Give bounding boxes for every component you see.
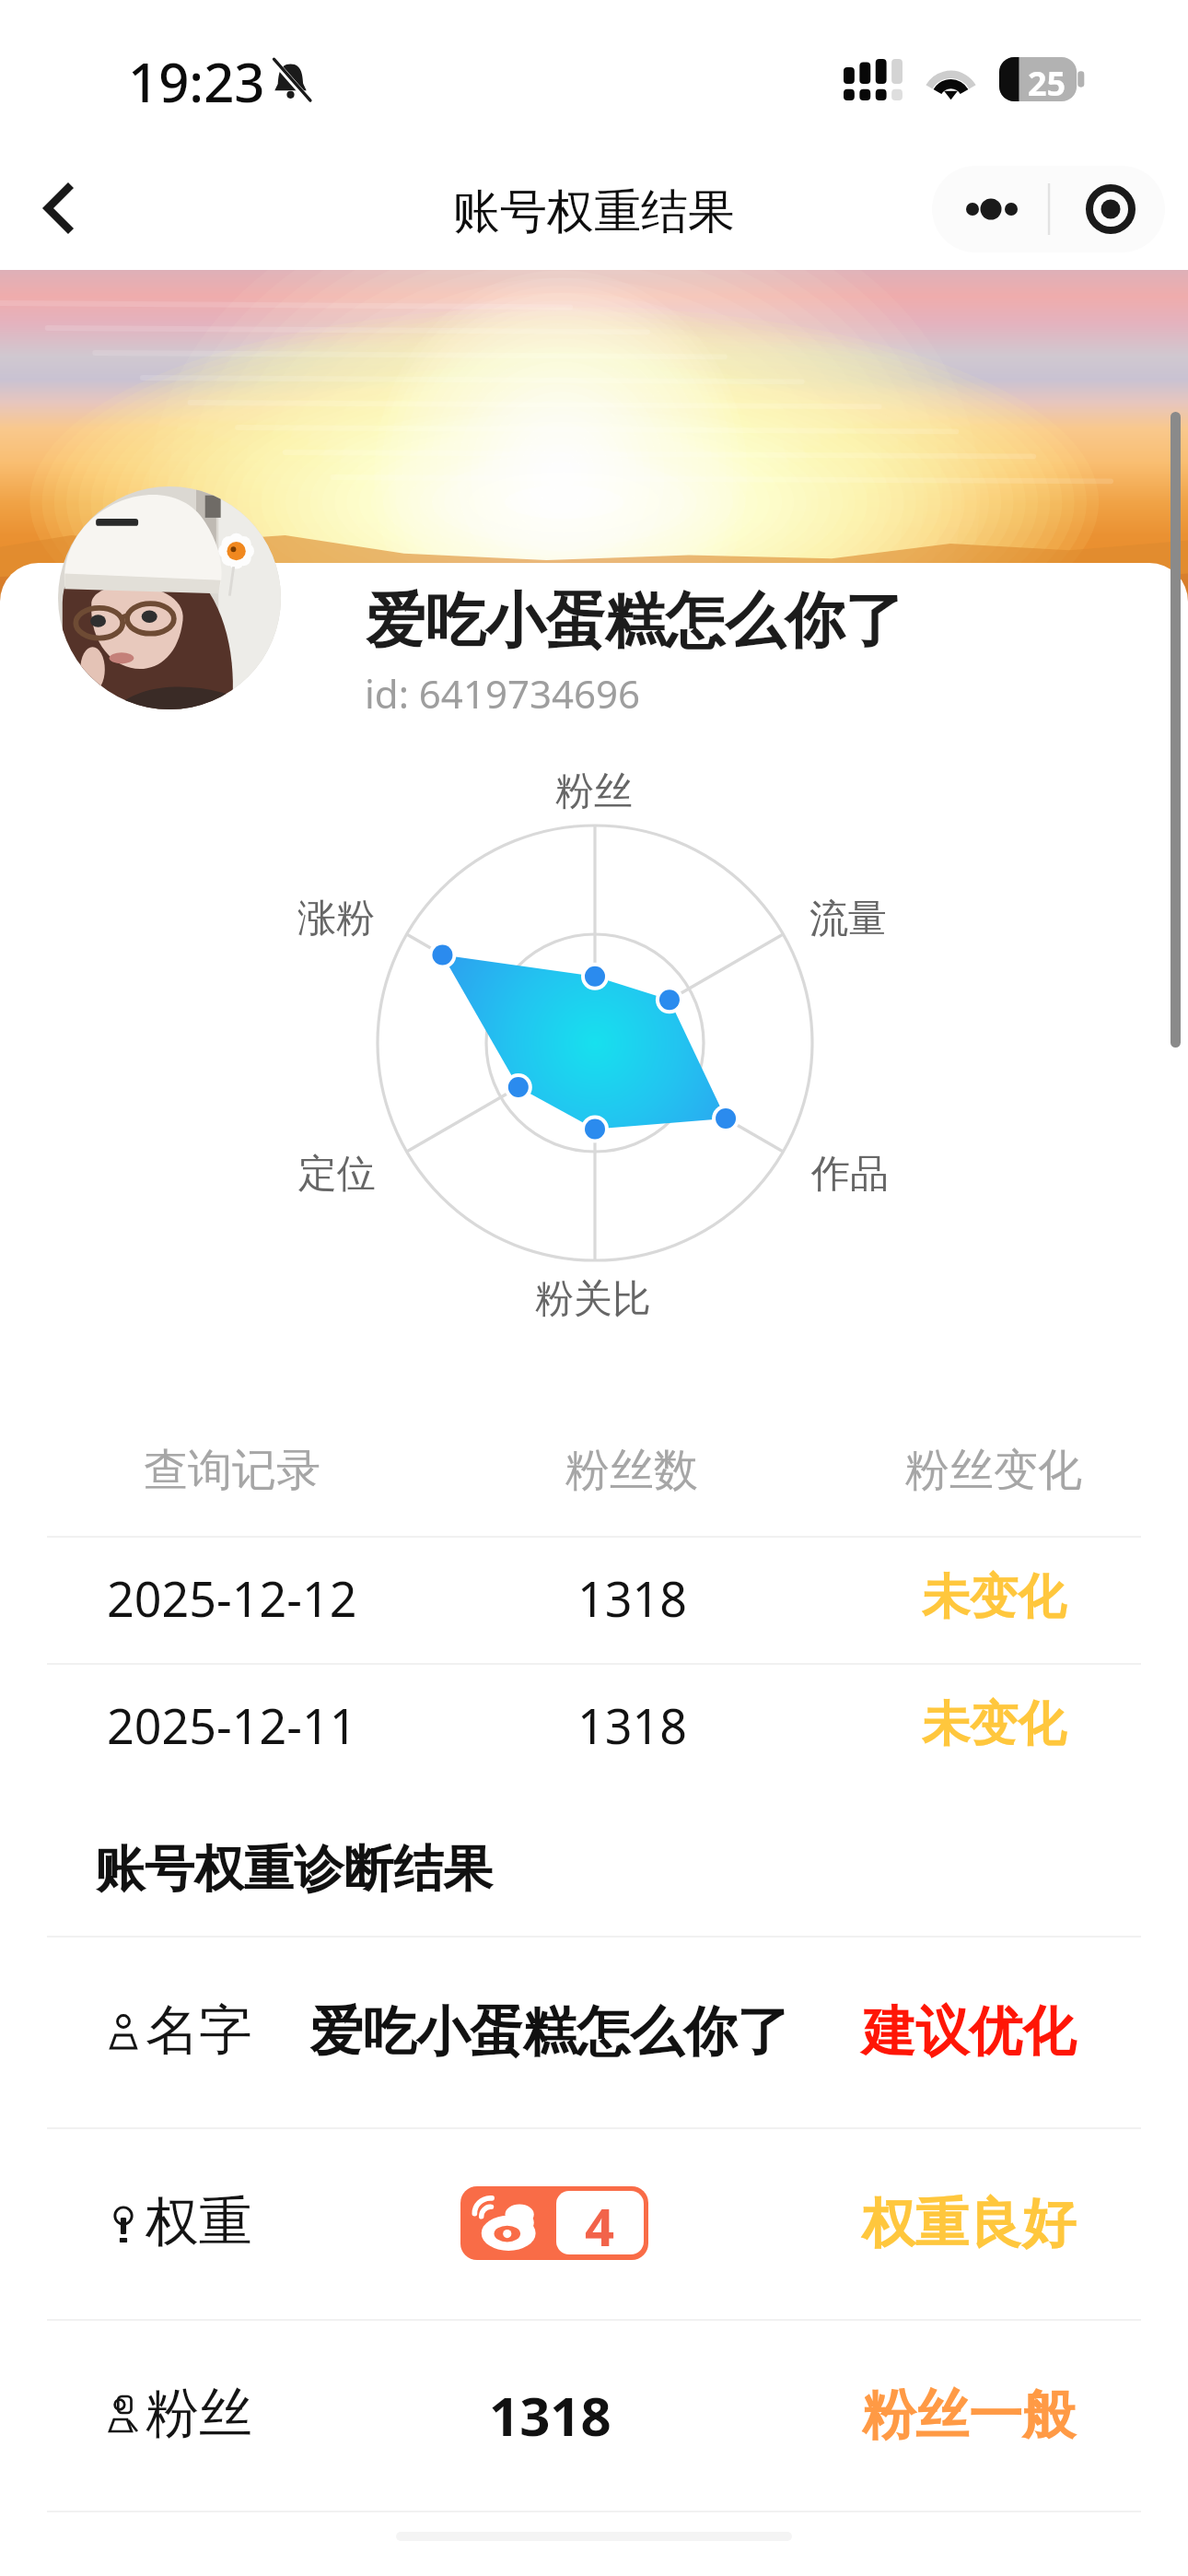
staticText: 权重良好 <box>862 2190 1076 2257</box>
staticText: 名字 <box>146 1996 252 2064</box>
staticText: 账号权重结果 <box>453 182 735 241</box>
staticText: 25 <box>1028 61 1066 98</box>
staticText: 定位 <box>298 1150 376 1199</box>
button[interactable] <box>0 1663 1188 1790</box>
staticText: 粉丝 <box>555 767 633 816</box>
button[interactable] <box>0 1536 1188 1663</box>
staticText: 2025-12-12 <box>107 1565 357 1631</box>
button[interactable]: Back <box>9 147 112 258</box>
staticText: 未变化 <box>922 1567 1066 1628</box>
staticText: 流量 <box>809 895 887 943</box>
button[interactable]: Avatar <box>58 486 281 709</box>
staticText: id: 6419734696 <box>365 667 641 720</box>
staticText: 粉丝数 <box>565 1443 698 1498</box>
staticText: 1318 <box>577 1692 687 1758</box>
staticText: 4 <box>585 2191 615 2254</box>
button[interactable] <box>0 2127 1188 2319</box>
staticText: 粉丝变化 <box>905 1443 1082 1498</box>
button[interactable] <box>0 2319 1188 2511</box>
staticText: 粉丝 <box>146 2380 252 2447</box>
staticText: 涨粉 <box>297 895 375 943</box>
staticText: 未变化 <box>922 1694 1066 1755</box>
button[interactable]: Weibo weight 4 <box>460 2186 648 2260</box>
staticText: 查询记录 <box>144 1443 320 1498</box>
button[interactable] <box>0 1936 1188 2127</box>
staticText: 1318 <box>577 1565 687 1631</box>
staticText: 19:23 <box>128 45 265 118</box>
staticText: 2025-12-11 <box>107 1692 357 1758</box>
staticText: 爱吃小蛋糕怎么你了 <box>366 583 904 659</box>
staticText: 粉关比 <box>535 1275 651 1324</box>
staticText: 粉丝一般 <box>862 2382 1076 2449</box>
staticText: 爱吃小蛋糕怎么你了 <box>309 1998 790 2066</box>
staticText: 1318 <box>489 2379 611 2452</box>
staticText: 权重 <box>146 2188 252 2255</box>
button[interactable]: More options <box>932 166 1165 252</box>
staticText: 账号权重诊断结果 <box>95 1838 493 1901</box>
staticText: 建议优化 <box>862 1998 1076 2066</box>
staticText: 作品 <box>811 1150 889 1199</box>
